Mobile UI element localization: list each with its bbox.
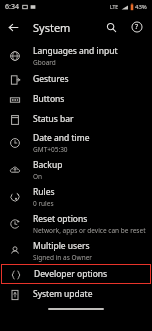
- button[interactable]: Buttons: [0, 89, 152, 109]
- staticText: GMT+05:30: [33, 145, 68, 154]
- staticText: System update: [33, 288, 93, 300]
- button[interactable]: Backup: [0, 156, 152, 183]
- staticText: Developer options: [34, 268, 108, 280]
- staticText: Date and time: [33, 132, 90, 144]
- button[interactable]: Developer options: [1, 264, 151, 284]
- staticText: 6:34: [5, 2, 19, 12]
- button[interactable]: Gestures: [0, 69, 152, 89]
- staticText: Languages and input: [33, 45, 118, 57]
- staticText: Buttons: [33, 93, 65, 105]
- button[interactable]: Reset options: [0, 210, 152, 237]
- button[interactable]: Date and time: [0, 129, 152, 156]
- staticText: Network, apps or device can be reset: [33, 226, 146, 235]
- button[interactable]: Search: [98, 14, 124, 40]
- staticText: 0 rules: [33, 199, 54, 208]
- button[interactable]: Back: [0, 14, 26, 40]
- button[interactable]: Status bar: [0, 109, 152, 129]
- staticText: Rules: [33, 186, 55, 198]
- staticText: Multiple users: [33, 240, 90, 252]
- button[interactable]: Rules: [0, 183, 152, 210]
- staticText: ?: [135, 22, 139, 32]
- staticText: Status bar: [33, 113, 74, 125]
- button[interactable]: System update: [0, 284, 152, 304]
- button[interactable]: Help: [124, 14, 150, 40]
- staticText: On: [33, 172, 43, 181]
- staticText: Gestures: [33, 73, 69, 85]
- staticText: 43%: [135, 3, 147, 11]
- staticText: Gboard: [33, 58, 56, 67]
- staticText: Backup: [33, 159, 63, 171]
- button[interactable]: Languages and input: [0, 42, 152, 69]
- staticText: Reset options: [33, 213, 88, 225]
- staticText: System: [33, 20, 71, 35]
- staticText: LTE: [110, 4, 119, 11]
- button[interactable]: Multiple users: [0, 237, 152, 264]
- staticText: Signed in as Owner: [33, 253, 93, 262]
